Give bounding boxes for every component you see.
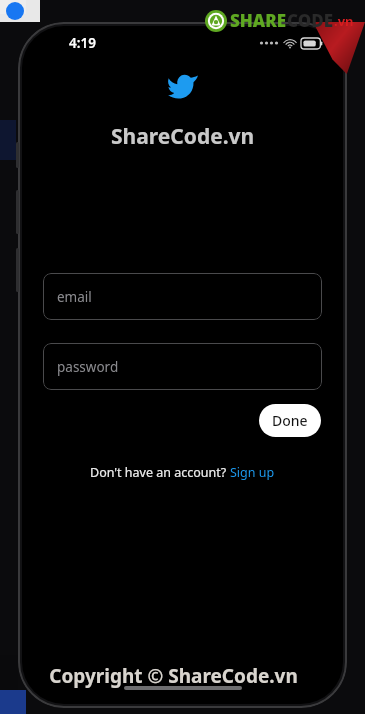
staticText: 4:19	[69, 34, 96, 52]
staticText: password	[57, 358, 119, 376]
staticText: ShareCode.vn	[111, 122, 255, 151]
staticText: email	[57, 288, 92, 306]
button[interactable]: Sign up	[230, 464, 275, 481]
staticText: Done	[272, 411, 308, 430]
staticText: .vn	[334, 12, 354, 30]
staticText: Don't have an account?	[90, 464, 230, 481]
staticText: SHARE	[230, 9, 287, 32]
other: Twitter logo	[166, 70, 200, 104]
button[interactable]: email	[43, 273, 322, 320]
staticText: Copyright © ShareCode.vn	[49, 663, 298, 689]
button[interactable]: Done	[259, 404, 321, 437]
staticText: CODE	[287, 9, 334, 32]
button[interactable]: password	[43, 343, 322, 390]
staticText: Sign up	[230, 464, 275, 481]
